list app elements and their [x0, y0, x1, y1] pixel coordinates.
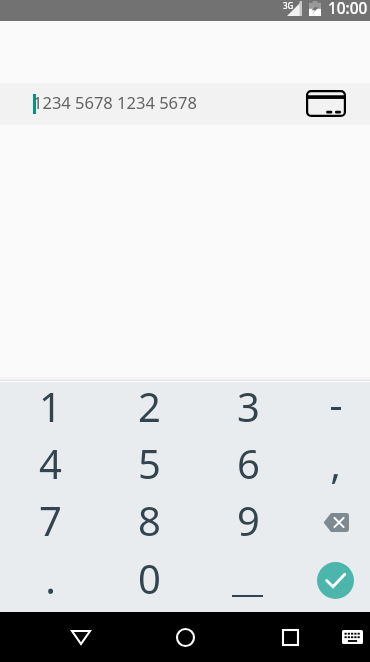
- button[interactable]: 1234 5678 1234 5678: [0, 83, 370, 125]
- staticText: 10:00: [328, 0, 368, 19]
- button[interactable]: 0: [99, 554, 198, 612]
- button[interactable]: 3: [198, 382, 297, 439]
- button[interactable]: Confirm: [297, 554, 370, 612]
- staticText: 8: [138, 493, 161, 547]
- button[interactable]: Home: [159, 612, 211, 662]
- staticText: 5: [138, 436, 161, 490]
- staticText: 1234 5678 1234 5678: [33, 91, 197, 113]
- button[interactable]: Recents: [264, 612, 316, 662]
- button[interactable]: 5: [99, 439, 198, 496]
- staticText: 9: [237, 493, 260, 547]
- staticText: 3G: [283, 0, 294, 11]
- button[interactable]: Back: [55, 612, 107, 662]
- staticText: 0: [138, 551, 161, 605]
- staticText: .: [45, 551, 56, 605]
- button[interactable]: 4: [0, 439, 99, 496]
- button[interactable]: .: [0, 554, 99, 612]
- staticText: 3: [237, 379, 260, 433]
- staticText: 7: [39, 493, 62, 547]
- button[interactable]: Confirm: [317, 562, 354, 599]
- staticText: ,: [330, 436, 341, 490]
- button[interactable]: Backspace: [297, 496, 370, 554]
- button[interactable]: ,: [297, 439, 370, 496]
- staticText: 2: [138, 379, 161, 433]
- button[interactable]: 9: [198, 496, 297, 554]
- staticText: 6: [237, 436, 260, 490]
- button[interactable]: 7: [0, 496, 99, 554]
- staticText: 1: [39, 379, 62, 433]
- other: Backspace: [323, 513, 349, 532]
- button[interactable]: 2: [99, 382, 198, 439]
- button[interactable]: Scan card: [296, 83, 356, 125]
- button[interactable]: [297, 382, 370, 439]
- button[interactable]: 6: [198, 439, 297, 496]
- button[interactable]: 1: [0, 382, 99, 439]
- button[interactable]: Switch keyboard: [332, 612, 370, 662]
- staticText: 4: [39, 436, 62, 490]
- button[interactable]: 8: [99, 496, 198, 554]
- button[interactable]: [198, 554, 297, 612]
